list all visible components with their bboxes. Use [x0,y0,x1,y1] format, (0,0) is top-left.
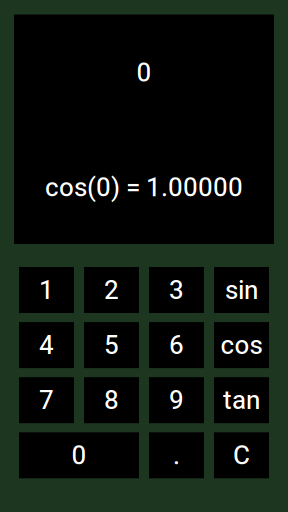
staticText: 6 [169,330,184,360]
button[interactable]: 8 [84,377,139,423]
button[interactable]: 5 [84,322,139,368]
button[interactable]: tan [214,377,269,423]
staticText: 7 [39,385,54,415]
staticText: 0 [71,440,86,471]
button[interactable]: C [214,432,269,478]
staticText: 3 [169,275,184,305]
button[interactable]: 1 [19,267,74,313]
staticText: 0 [136,57,151,88]
staticText: cos(0) = 1.00000 [45,172,243,202]
staticText: C [233,440,250,471]
button[interactable]: 9 [149,377,204,423]
button[interactable]: 6 [149,322,204,368]
staticText: 1 [39,275,54,305]
staticText: 8 [104,385,119,415]
button[interactable]: 7 [19,377,74,423]
button[interactable]: sin [214,267,269,313]
button[interactable]: 2 [84,267,139,313]
button[interactable]: 3 [149,267,204,313]
staticText: 4 [39,330,54,360]
staticText: cos [220,330,262,360]
staticText: 5 [104,330,119,360]
staticText: . [173,440,180,471]
staticText: 2 [104,275,119,305]
button[interactable]: 4 [19,322,74,368]
button[interactable]: 0 [19,432,139,478]
staticText: tan [223,385,260,415]
staticText: 9 [169,385,184,415]
button[interactable]: . [149,432,204,478]
button[interactable]: cos [214,322,269,368]
staticText: sin [225,275,258,305]
